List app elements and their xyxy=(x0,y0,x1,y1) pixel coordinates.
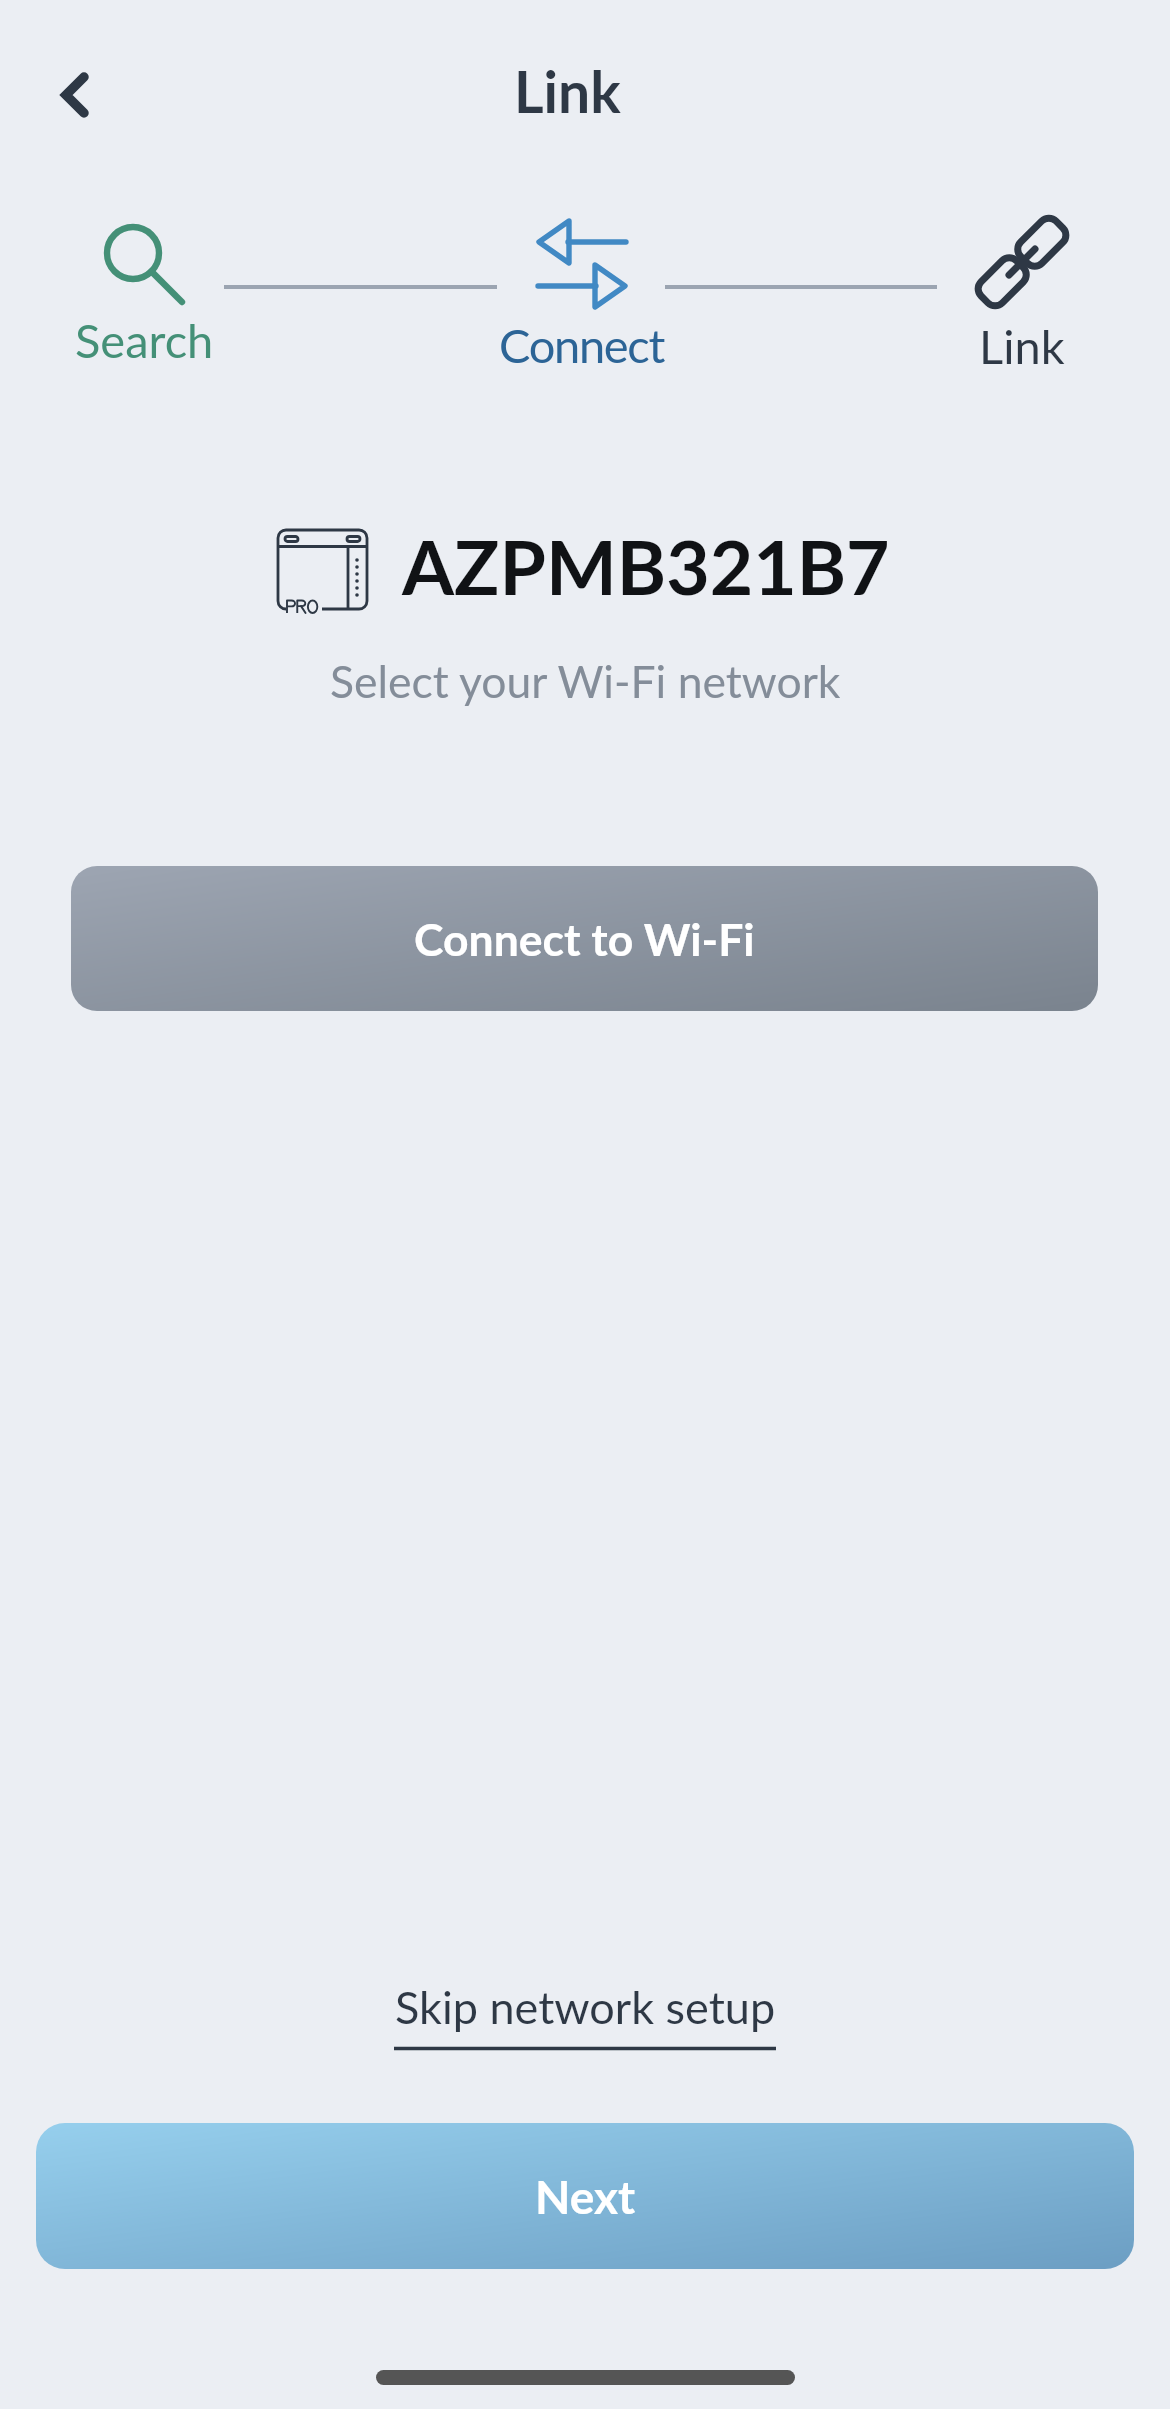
staticText: AZPMB321B7 xyxy=(402,521,890,611)
button[interactable]: Connect to Wi-Fi xyxy=(71,866,1098,1011)
staticText: Next xyxy=(535,2169,636,2224)
button[interactable]: Link step xyxy=(927,200,1117,370)
staticText: Link xyxy=(514,57,621,125)
staticText: Skip network setup xyxy=(395,1980,776,2034)
staticText: Link xyxy=(979,318,1065,374)
button[interactable]: Skip network setup xyxy=(373,1969,797,2061)
staticText: Select your Wi-Fi network xyxy=(330,654,841,707)
staticText: Search xyxy=(75,312,214,368)
button[interactable]: Connect step xyxy=(487,200,677,370)
button[interactable]: Search step xyxy=(49,200,239,370)
staticText: Connect to Wi-Fi xyxy=(414,912,755,965)
button[interactable]: Back xyxy=(30,50,120,140)
button[interactable]: Next xyxy=(36,2123,1134,2269)
staticText: Connect xyxy=(499,317,665,373)
